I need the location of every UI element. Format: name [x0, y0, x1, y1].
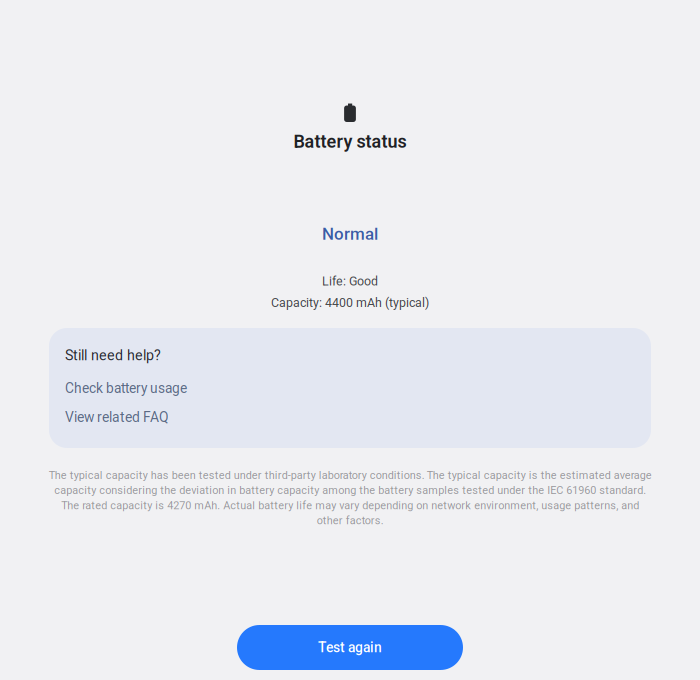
staticText: Normal	[322, 224, 378, 244]
button[interactable]: Check battery usage	[49, 374, 651, 403]
staticText: Still need help?	[65, 347, 161, 364]
staticText: View related FAQ	[65, 409, 169, 425]
button[interactable]: View related FAQ	[49, 403, 651, 432]
staticText: Test again	[318, 639, 382, 656]
staticText: The typical capacity has been tested und…	[48, 469, 651, 527]
staticText: Battery status	[293, 131, 406, 152]
staticText: Check battery usage	[65, 380, 187, 396]
staticText: Life: Good	[322, 274, 378, 288]
button[interactable]: Test again	[237, 625, 463, 670]
staticText: Capacity: 4400 mAh (typical)	[271, 295, 429, 310]
